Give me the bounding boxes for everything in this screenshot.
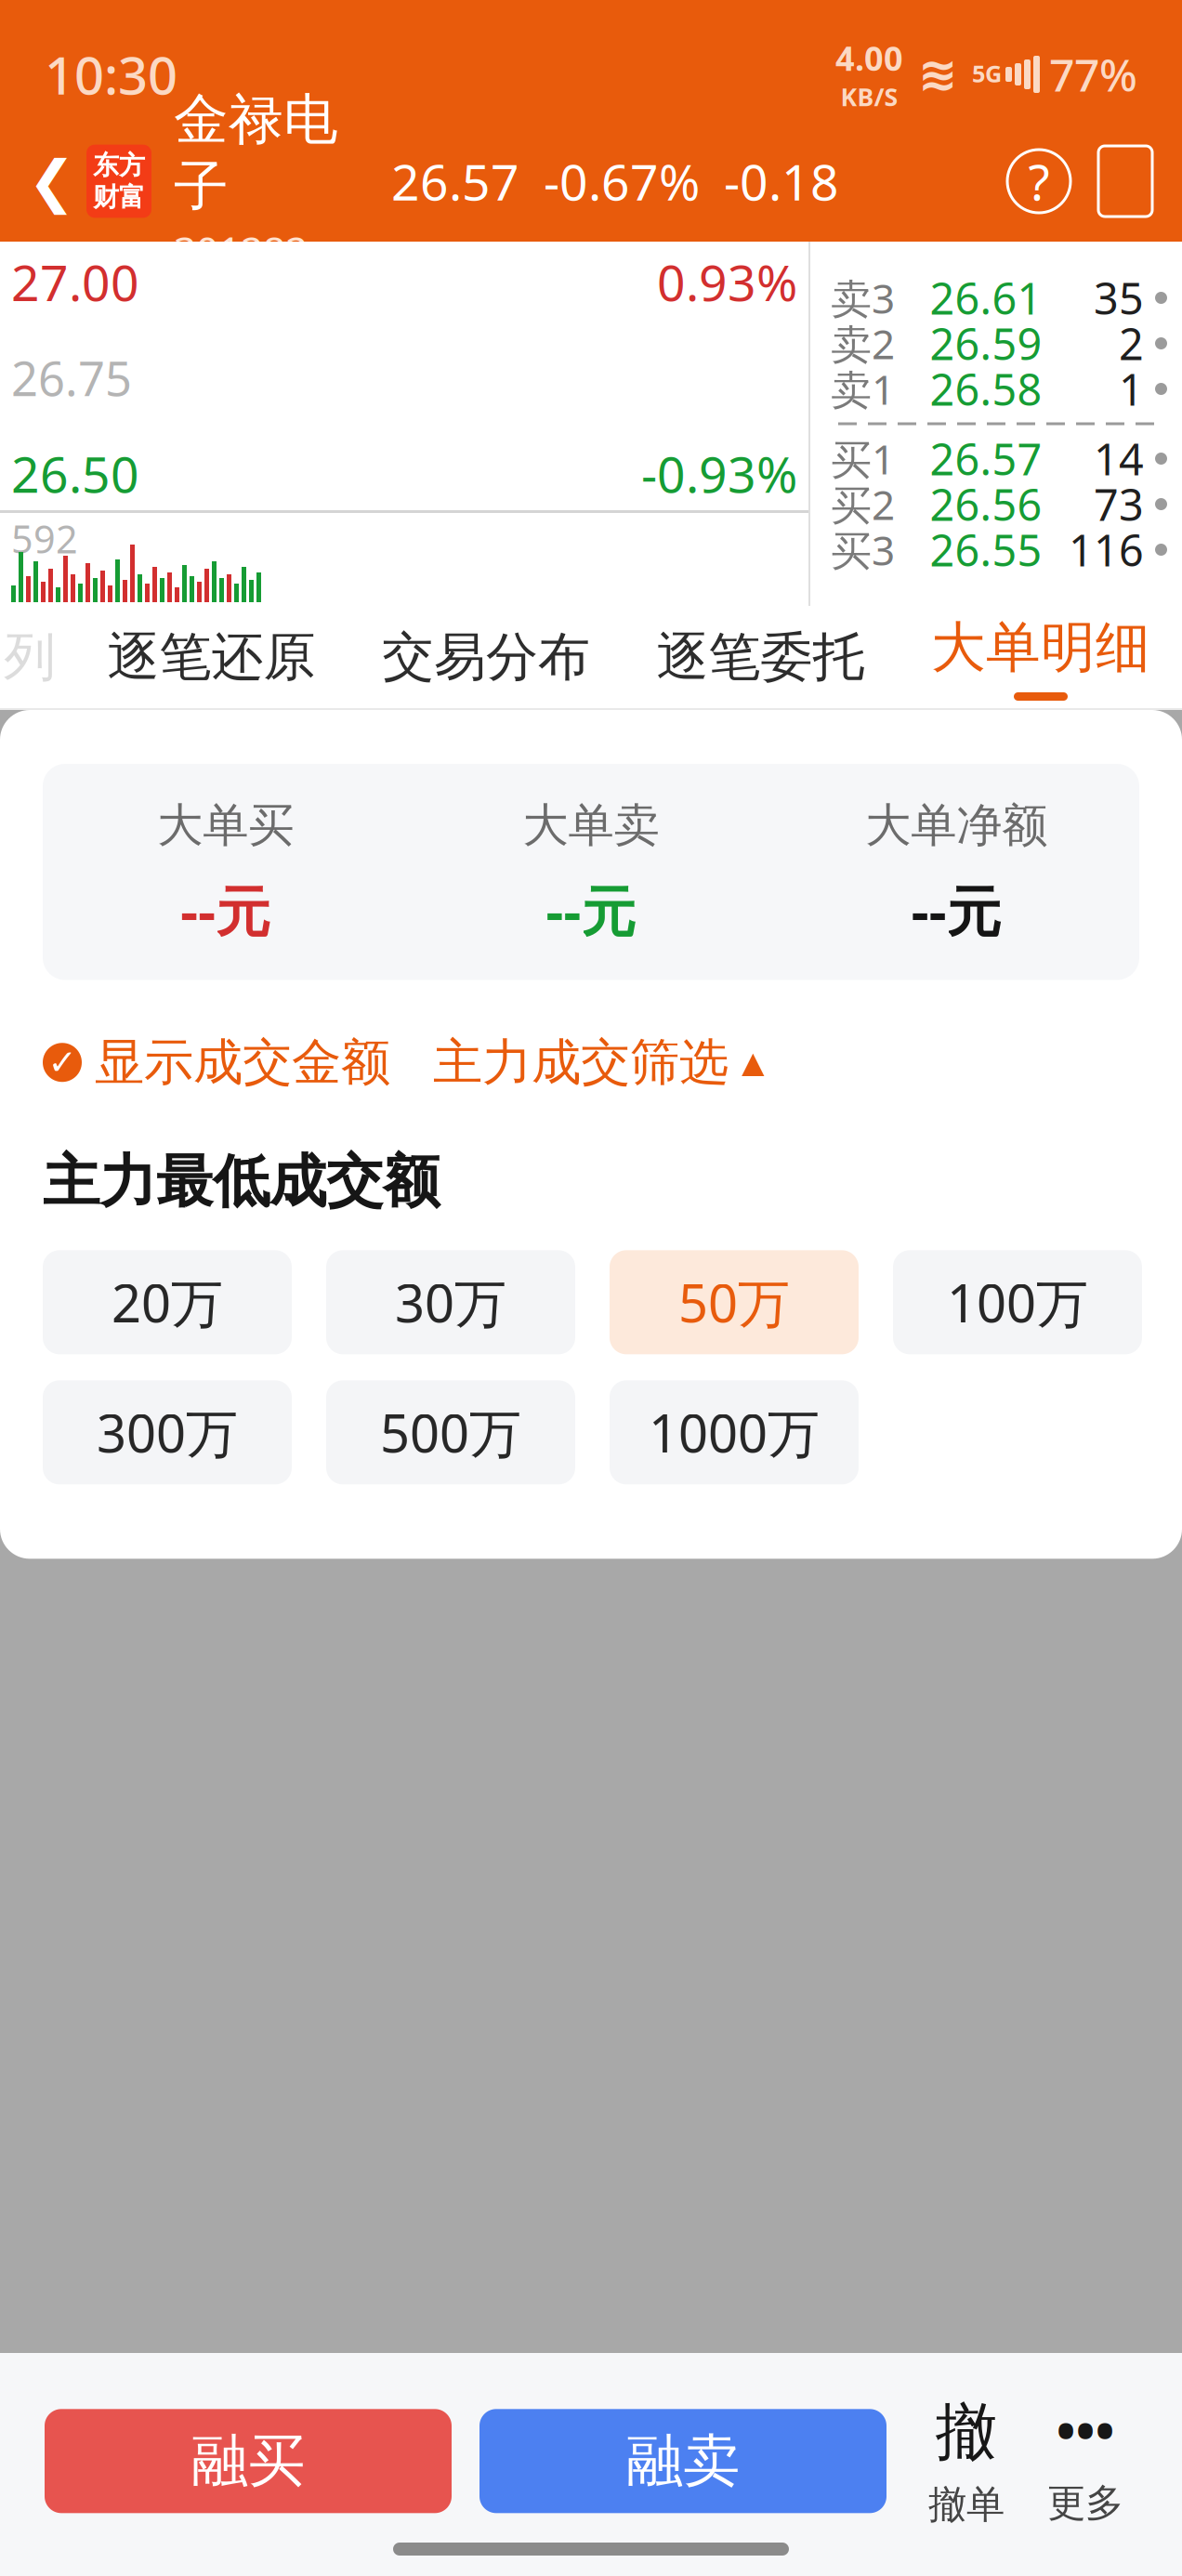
staticText: 10:30 [45, 40, 177, 109]
button[interactable]: 交易分布 [367, 606, 605, 708]
button[interactable]: 1000万 [610, 1380, 859, 1484]
staticText: 26.57 [391, 148, 519, 214]
staticText: 逐笔委托 [657, 625, 865, 689]
staticText: 融买 [191, 2426, 305, 2496]
staticText: 金禄电子 [174, 86, 338, 220]
staticText: 主动卖 [852, 720, 989, 776]
staticText: 全部 [48, 1032, 162, 1102]
staticText: 26.57 [930, 430, 1042, 487]
staticText: KB/S [841, 80, 898, 113]
button[interactable]: 融卖 [452, 2409, 886, 2513]
button[interactable]: 300万 [43, 1380, 292, 1484]
button[interactable]: 500万 [326, 1380, 575, 1484]
staticText: 4.00 [835, 36, 903, 80]
staticText: ❮ [28, 149, 75, 214]
staticText: 交易分布 [382, 625, 590, 689]
staticText: 卖2 [831, 316, 895, 371]
staticText: ✓ [48, 1043, 77, 1082]
staticText: 财富 [93, 181, 145, 213]
staticText: 301282 [174, 224, 308, 276]
staticText: 大单明细 [931, 614, 1150, 681]
staticText: 26.59 [930, 315, 1042, 372]
button[interactable]: 扫一扫 [1070, 146, 1182, 217]
staticText: 100万 [947, 1268, 1088, 1337]
staticText: 大单卖 [523, 797, 659, 854]
button[interactable]: ✓ [43, 1023, 390, 1102]
button[interactable]: 买单 [171, 1043, 342, 1113]
button[interactable]: 全部 [39, 1032, 171, 1124]
button[interactable]: 帮助 [1007, 150, 1070, 213]
staticText: 买卖行为 [39, 1176, 232, 1235]
staticText: 26.61 [930, 269, 1042, 327]
staticText: 卖1 [831, 362, 895, 416]
button[interactable]: 大单明细 [916, 606, 1165, 708]
button[interactable]: 主力成交筛选 [390, 1023, 765, 1102]
staticText: --元 [911, 874, 1002, 946]
staticText: 50万 [678, 1268, 790, 1337]
staticText: 融卖 [626, 2426, 740, 2496]
staticText: 26.50 [11, 441, 139, 506]
staticText: ? [1028, 148, 1050, 214]
button[interactable]: 返回 [0, 121, 164, 242]
staticText: 14 [1094, 430, 1144, 487]
staticText: 116 [1069, 521, 1144, 578]
staticText: 2 [1119, 315, 1144, 372]
staticText: 卖3 [831, 271, 895, 325]
staticText: 买3 [831, 523, 895, 577]
staticText: 撤单 [928, 2481, 1005, 2528]
button[interactable]: 50万 [610, 1250, 859, 1354]
staticText: 显示成交金额 [95, 1032, 390, 1093]
staticText: 列 [4, 625, 56, 689]
button[interactable]: 100万 [893, 1250, 1142, 1354]
staticText: 500万 [380, 1398, 521, 1467]
staticText: 逐笔还原 [107, 625, 315, 689]
staticText: 买单 [219, 1043, 333, 1113]
button[interactable]: 撤 [914, 2394, 1018, 2528]
staticText: --元 [180, 874, 271, 946]
button[interactable]: 金禄电子 [164, 121, 371, 242]
button[interactable]: 30万 [326, 1250, 575, 1354]
staticText: 35 [1094, 269, 1144, 327]
button[interactable]: 卖单 [342, 1043, 504, 1113]
staticText: 买1 [831, 431, 895, 486]
button[interactable]: 逐笔委托 [642, 606, 880, 708]
button[interactable]: 融买 [45, 2409, 452, 2513]
staticText: 26.56 [930, 475, 1042, 533]
staticText: 592 [11, 513, 78, 564]
staticText: 27.00 [11, 249, 139, 315]
staticText: -0.93% [650, 724, 788, 781]
staticText: 26.58 [930, 360, 1042, 418]
staticText: 主力最低成交额 [43, 1147, 440, 1217]
staticText: 1 [1119, 360, 1144, 418]
staticText: 卖单 [381, 1043, 494, 1113]
staticText: 26.55 [930, 521, 1042, 578]
staticText: 26.75 [11, 347, 132, 409]
staticText: 东方 [93, 149, 145, 181]
staticText: 300万 [97, 1398, 238, 1467]
staticText: ▲ [742, 1046, 765, 1079]
button[interactable]: 20万 [43, 1250, 292, 1354]
staticText: 撤 [935, 2394, 998, 2470]
staticText: 成交量 [353, 1176, 498, 1235]
staticText: 大单买 [157, 797, 294, 854]
staticText: 大单净额 [865, 797, 1048, 854]
staticText: -0.93% [641, 441, 797, 506]
staticText: 77% [1049, 45, 1137, 104]
staticText: 1000万 [649, 1398, 820, 1467]
button[interactable]: 逐笔还原 [92, 606, 330, 708]
staticText: 更多 [1047, 2479, 1123, 2527]
button[interactable]: ••• [1018, 2396, 1137, 2527]
staticText: --元 [546, 874, 636, 946]
staticText: 0元 [13, 724, 82, 781]
staticText: 20万 [112, 1268, 223, 1337]
staticText: -0.18 [724, 148, 839, 214]
